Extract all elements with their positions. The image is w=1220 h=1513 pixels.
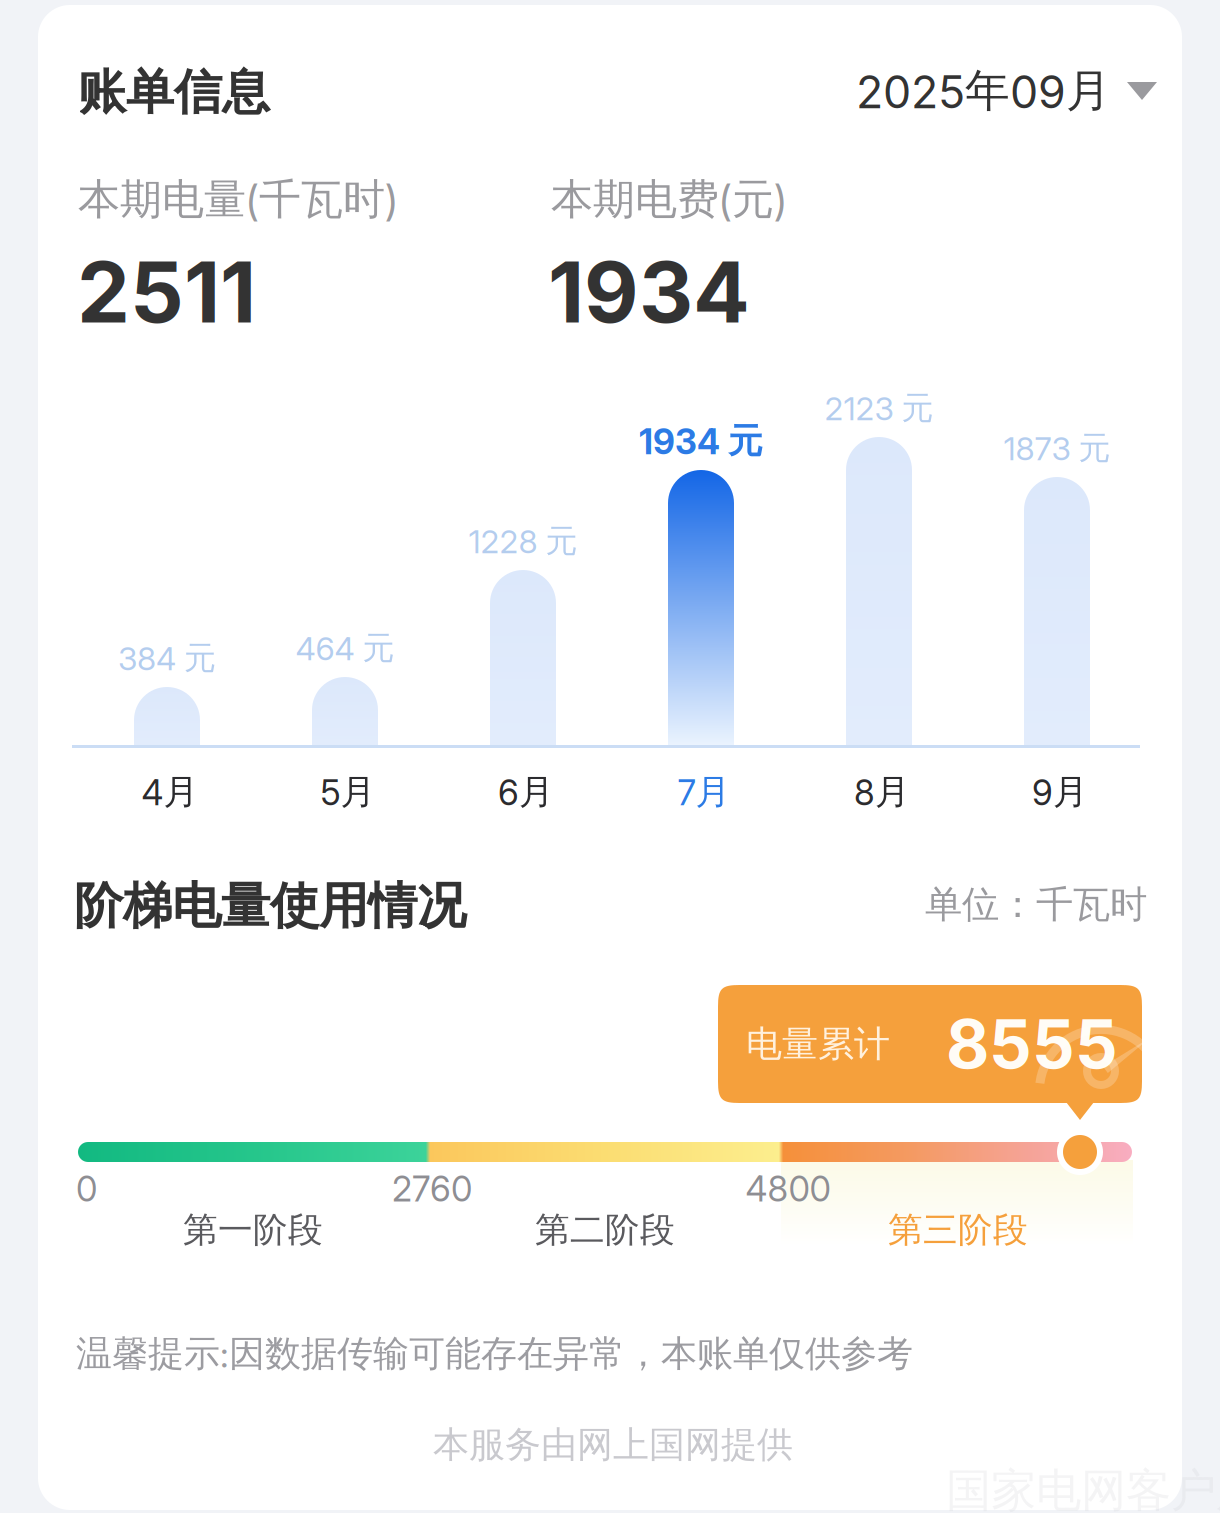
staticText: 464 元 [295, 628, 394, 668]
staticText: 电量累计 [746, 1021, 890, 1067]
staticText: 0 [76, 1168, 97, 1210]
staticText: 第三阶段 [888, 1208, 1028, 1252]
staticText: 7月 [677, 770, 730, 814]
staticText: 第二阶段 [535, 1208, 675, 1252]
staticText: 5月 [320, 770, 375, 814]
staticText: 2123 元 [824, 388, 933, 428]
staticText: 第一阶段 [183, 1208, 323, 1252]
staticText: 1228 元 [468, 521, 577, 561]
staticText: 9月 [1032, 770, 1088, 814]
staticText: 6月 [498, 770, 554, 814]
staticText: 2025年09月 [856, 63, 1111, 119]
staticText: 本服务由网上国网提供 [433, 1422, 793, 1467]
staticText: 8555 [946, 1004, 1118, 1084]
staticText: 温馨提示:因数据传输可能存在异常，本账单仅供参考 [76, 1331, 913, 1376]
staticText: 384 元 [118, 638, 216, 678]
staticText: 账单信息 [78, 62, 270, 122]
staticText: 本期电费(元) [551, 173, 787, 226]
staticText: 4800 [745, 1168, 830, 1210]
staticText: 4月 [141, 770, 198, 814]
staticText: 8月 [854, 770, 910, 814]
staticText: 单位：千瓦时 [925, 881, 1147, 928]
staticText: 1873 元 [1003, 428, 1110, 468]
staticText: 1934 [548, 241, 750, 343]
staticText: 本期电量(千瓦时) [78, 173, 398, 226]
button[interactable]: 2025年09月 [840, 62, 1157, 120]
staticText: 1934 元 [639, 419, 763, 463]
staticText: 国家电网客户服务 [946, 1462, 1220, 1513]
staticText: 2760 [392, 1168, 472, 1210]
staticText: 2511 [77, 241, 256, 343]
staticText: 阶梯电量使用情况 [74, 875, 466, 937]
